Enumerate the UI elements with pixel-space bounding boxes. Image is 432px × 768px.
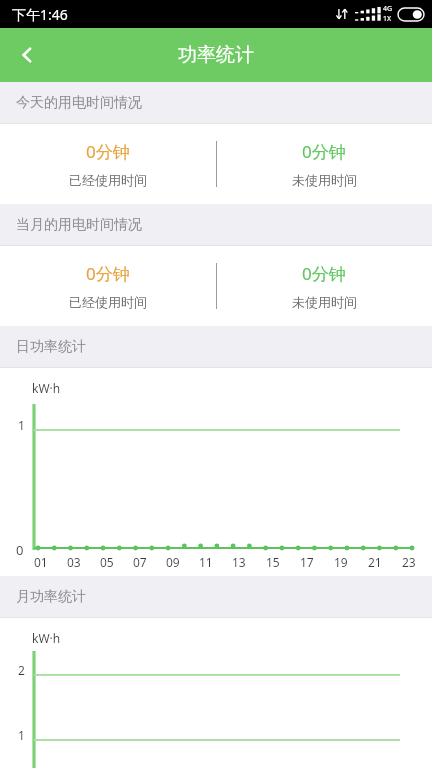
staticText: 0分钟 [86, 262, 130, 285]
staticText: 19 [334, 554, 348, 570]
staticText: 17 [300, 554, 314, 570]
staticText: 已经使用时间 [69, 294, 147, 310]
staticText: 4G [383, 4, 393, 14]
button[interactable]: 0分钟 [216, 124, 432, 204]
staticText: 未使用时间 [292, 172, 357, 188]
staticText: kW·h [32, 380, 61, 396]
staticText: 1 [18, 727, 25, 743]
staticText: 月功率统计 [16, 588, 86, 606]
staticText: 0分钟 [86, 140, 130, 163]
staticText: 日功率统计 [16, 338, 86, 356]
staticText: 2 [18, 662, 25, 678]
staticText: 未使用时间 [292, 294, 357, 310]
staticText: 0 [16, 541, 24, 559]
staticText: 13 [232, 554, 246, 570]
staticText: 功率统计 [178, 43, 254, 67]
staticText: 15 [266, 554, 280, 570]
staticText: 09 [166, 554, 180, 570]
button[interactable]: 0分钟 [0, 124, 216, 204]
staticText: 0分钟 [302, 140, 346, 163]
staticText: 05 [100, 554, 114, 570]
staticText: 下午1:46 [12, 5, 68, 24]
staticText: 0分钟 [302, 262, 346, 285]
staticText: 23 [402, 554, 416, 570]
staticText: kW·h [32, 630, 61, 646]
staticText: 21 [368, 554, 382, 570]
staticText: 今天的用电时间情况 [16, 94, 142, 112]
staticText: 已经使用时间 [69, 172, 147, 188]
staticText: 当月的用电时间情况 [16, 216, 142, 234]
button[interactable]: 0分钟 [216, 246, 432, 326]
staticText: 1 [18, 417, 25, 433]
button[interactable]: Back [0, 28, 54, 82]
staticText: 11 [199, 554, 213, 570]
button[interactable]: 0分钟 [0, 246, 216, 326]
staticText: 1X [383, 14, 392, 24]
staticText: 07 [133, 554, 147, 570]
staticText: 01 [34, 554, 48, 570]
staticText: 03 [67, 554, 81, 570]
